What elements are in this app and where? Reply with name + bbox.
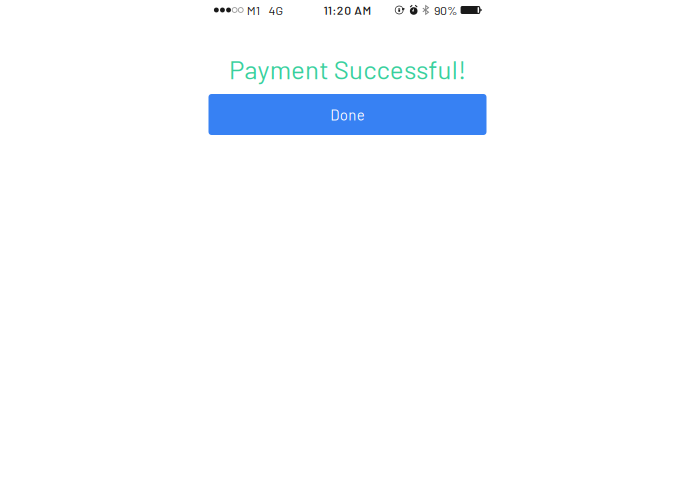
staticText: 90% bbox=[434, 3, 458, 17]
staticText: Done bbox=[330, 105, 365, 123]
staticText: Payment Successful! bbox=[229, 53, 466, 84]
staticText: 11:20 AM bbox=[323, 3, 372, 17]
staticText: 4G bbox=[269, 3, 284, 17]
staticText: M1 bbox=[247, 3, 260, 17]
button[interactable]: Done bbox=[208, 94, 486, 135]
